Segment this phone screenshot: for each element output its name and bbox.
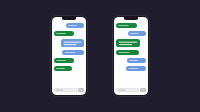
button[interactable]: Message input (54, 88, 77, 92)
button[interactable]: Sent message (128, 31, 146, 36)
button[interactable]: Message input (116, 88, 139, 92)
button[interactable]: Send (140, 88, 146, 92)
button[interactable]: Received message (54, 58, 74, 63)
button[interactable]: Sent message (127, 58, 146, 63)
button[interactable]: Received message (116, 39, 140, 47)
button[interactable]: Sent message (126, 66, 146, 71)
button[interactable]: Sent message (66, 23, 84, 28)
button[interactable]: Phone chat mockup (50, 15, 88, 97)
button[interactable]: Sent message (61, 39, 84, 47)
button[interactable]: Received message (54, 66, 72, 71)
button[interactable]: Received message (54, 31, 74, 36)
button[interactable]: Send (78, 88, 84, 92)
button[interactable]: Sent message (62, 50, 84, 55)
button[interactable]: Received message (116, 50, 139, 55)
button[interactable]: Received message (116, 23, 137, 28)
button[interactable]: Phone chat mockup (112, 15, 150, 97)
